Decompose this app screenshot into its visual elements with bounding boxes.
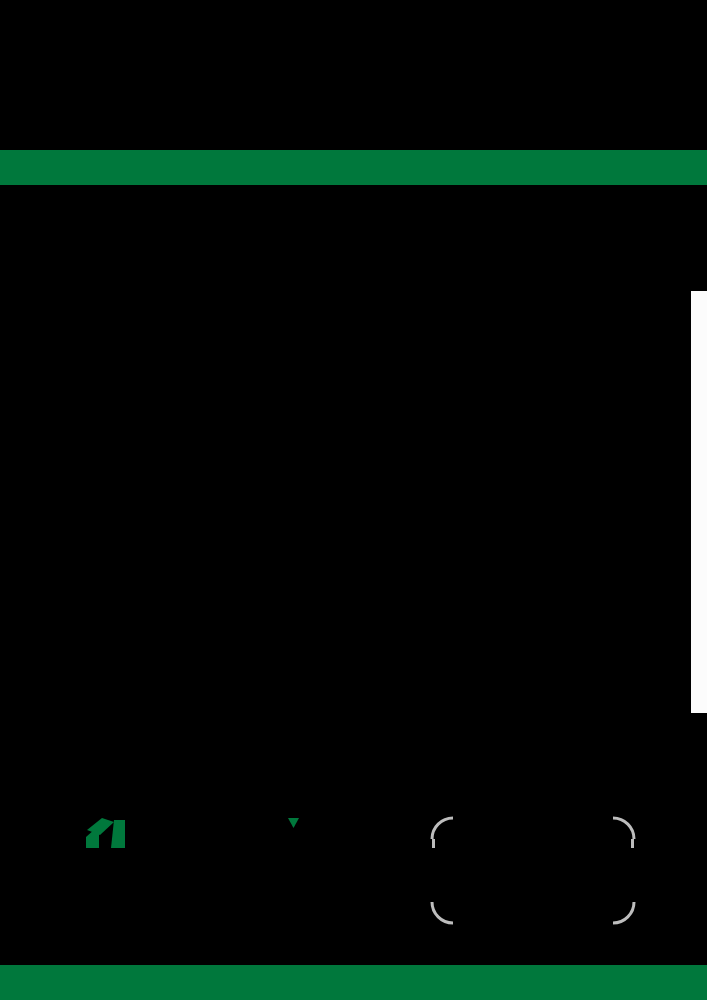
button[interactable]: Scan frame [428,814,638,927]
button[interactable]: Expand [284,812,304,834]
button[interactable]: Logo [84,808,132,852]
